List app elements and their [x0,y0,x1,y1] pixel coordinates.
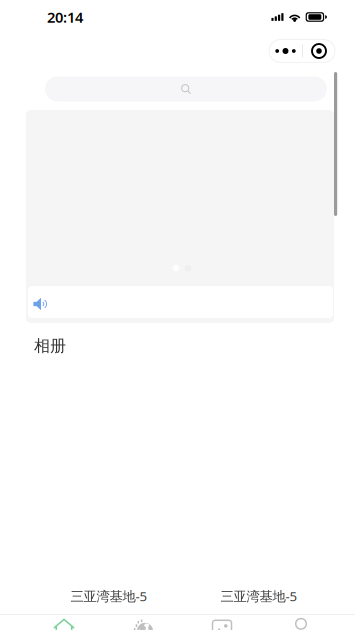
button[interactable]: Search [45,76,327,101]
button[interactable]: 发现 [103,616,182,630]
button[interactable]: 相册 [182,616,261,630]
staticText: 三亚湾基地-5 [70,587,147,605]
staticText: 20:14 [47,7,83,27]
button[interactable]: Close mini program [303,39,335,62]
button[interactable]: 我的 [261,616,340,630]
button[interactable]: More options [269,39,302,62]
button[interactable]: 三亚湾基地-5 [186,359,331,605]
staticText: 相册 [34,336,66,356]
button[interactable]: 首页 [24,616,103,630]
staticText: 三亚湾基地-5 [220,587,297,605]
button[interactable]: Play audio [28,286,333,318]
button[interactable]: 三亚湾基地-5 [36,359,181,605]
